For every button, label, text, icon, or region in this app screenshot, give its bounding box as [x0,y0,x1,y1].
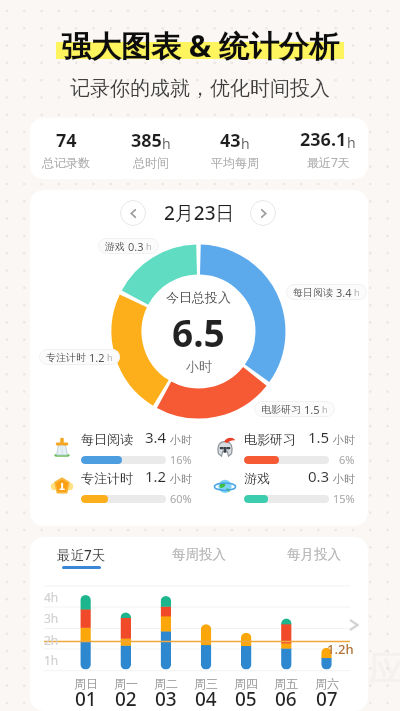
staticText: 周一 [114,676,138,691]
button[interactable]: 最近7天 [57,546,106,569]
staticText: 游戏 [244,470,270,486]
staticText: 0.3 [308,466,330,486]
staticText: 03 [155,686,177,711]
staticText: 2h [44,632,59,648]
staticText: 周二 [154,676,178,691]
staticText: 强大图表 & 统计分析 [61,25,340,66]
button[interactable]: 游戏 [214,466,355,506]
staticText: 2月23日 [164,200,235,226]
staticText: 每周投入 [172,546,226,563]
staticText: 1.5 [304,402,320,417]
button[interactable]: 74 [42,128,90,170]
staticText: 06 [275,686,297,711]
staticText: 60% [170,491,192,506]
button[interactable]: 每日阅读 [51,427,192,467]
staticText: 总记录数 [42,155,90,170]
staticText: 07 [316,686,338,711]
staticText: 周日 [74,676,98,691]
button[interactable]: Previous day [120,200,146,226]
staticText: 05 [235,686,257,711]
staticText: 3.4 [336,285,352,300]
staticText: 电影研习 [244,431,296,447]
staticText: 应 [368,646,400,691]
staticText: 6.5 [172,307,225,357]
staticText: 每月投入 [287,546,341,563]
button[interactable]: 每日阅读 [293,284,360,300]
staticText: 15% [333,491,355,506]
staticText: 平均每周 [211,155,259,170]
staticText: h [241,134,250,153]
button[interactable]: 电影研习 [214,427,355,467]
staticText: 3.4 [145,427,167,447]
staticText: h [162,134,171,153]
button[interactable]: 游戏 [105,238,152,254]
staticText: 游戏 [105,240,125,253]
staticText: 周三 [194,676,218,691]
staticText: 1.2h [327,640,354,658]
button[interactable]: 专注计时 [51,466,192,506]
staticText: 每日阅读 [293,286,333,299]
staticText: h [107,351,113,363]
staticText: 236.1 [300,127,347,152]
button[interactable]: 236.1 [300,127,356,170]
staticText: 电影研习 [261,403,301,416]
staticText: 385 [131,128,162,153]
staticText: 1.2 [145,466,167,486]
staticText: 专注计时 [81,470,133,486]
staticText: 每日阅读 [81,431,133,447]
button[interactable]: Next day [250,200,276,226]
staticText: 01 [75,686,97,711]
staticText: 3h [44,610,59,626]
staticText: 小时 [170,433,192,447]
button[interactable]: More [346,617,362,633]
staticText: h [354,286,360,298]
staticText: 最近7天 [57,546,106,564]
button[interactable]: 电影研习 [261,401,328,417]
staticText: h [322,403,328,415]
staticText: 小时 [186,358,212,374]
staticText: 74 [56,128,77,153]
staticText: 02 [115,686,137,711]
staticText: 1h [44,652,59,668]
staticText: 周四 [234,676,258,691]
staticText: 16% [170,452,192,467]
button[interactable]: 385 [131,128,171,170]
staticText: 最近7天 [307,154,350,170]
staticText: 总时间 [133,155,169,170]
staticText: 6% [339,452,355,467]
button[interactable]: 每月投入 [287,546,341,565]
staticText: 记录你的成就，优化时间投入 [70,76,330,101]
staticText: 周五 [274,676,298,691]
staticText: 小时 [170,472,192,486]
staticText: 4h [44,589,59,605]
staticText: 小时 [333,472,355,486]
staticText: 04 [195,686,217,711]
button[interactable]: 43 [211,128,259,170]
staticText: h [347,133,356,152]
staticText: h [146,240,152,252]
staticText: 1.2 [89,350,105,365]
staticText: 周六 [315,676,339,691]
staticText: 0.3 [128,239,144,254]
staticText: 1.5 [308,427,330,447]
staticText: 43 [220,128,241,153]
staticText: 今日总投入 [166,289,231,305]
button[interactable]: 每周投入 [172,546,226,565]
button[interactable]: 专注计时 [46,349,113,365]
staticText: 专注计时 [46,351,86,364]
staticText: 小时 [333,433,355,447]
